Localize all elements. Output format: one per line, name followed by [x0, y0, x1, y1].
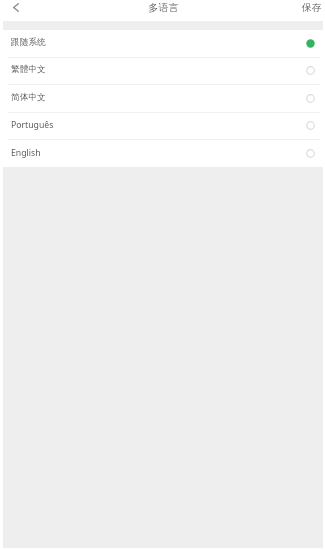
button[interactable]: 繁體中文: [3, 57, 323, 84]
button[interactable]: English: [3, 140, 323, 167]
button[interactable]: Português: [3, 112, 323, 139]
button[interactable]: 简体中文: [3, 85, 323, 112]
staticText: 跟随系统: [11, 37, 46, 48]
staticText: 保存: [302, 2, 322, 14]
staticText: 繁體中文: [11, 64, 46, 75]
button[interactable]: 跟随系统: [3, 30, 323, 57]
staticText: 简体中文: [11, 92, 46, 103]
button[interactable]: Back: [5, 0, 26, 15]
staticText: English: [11, 147, 41, 159]
button[interactable]: 保存: [294, 0, 323, 15]
staticText: 多语言: [148, 1, 179, 14]
staticText: Português: [11, 119, 54, 131]
